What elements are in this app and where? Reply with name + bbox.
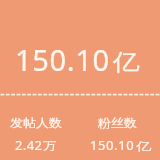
staticText: 150.10 [90, 136, 135, 154]
staticText: 2.42 [15, 136, 43, 154]
staticText: 150.10 [15, 40, 110, 79]
staticText: 亿 [136, 140, 152, 154]
staticText: 粉丝数 [98, 116, 137, 130]
staticText: 万 [43, 140, 57, 154]
staticText: 亿 [113, 47, 140, 76]
staticText: 发帖人数 [10, 116, 62, 130]
